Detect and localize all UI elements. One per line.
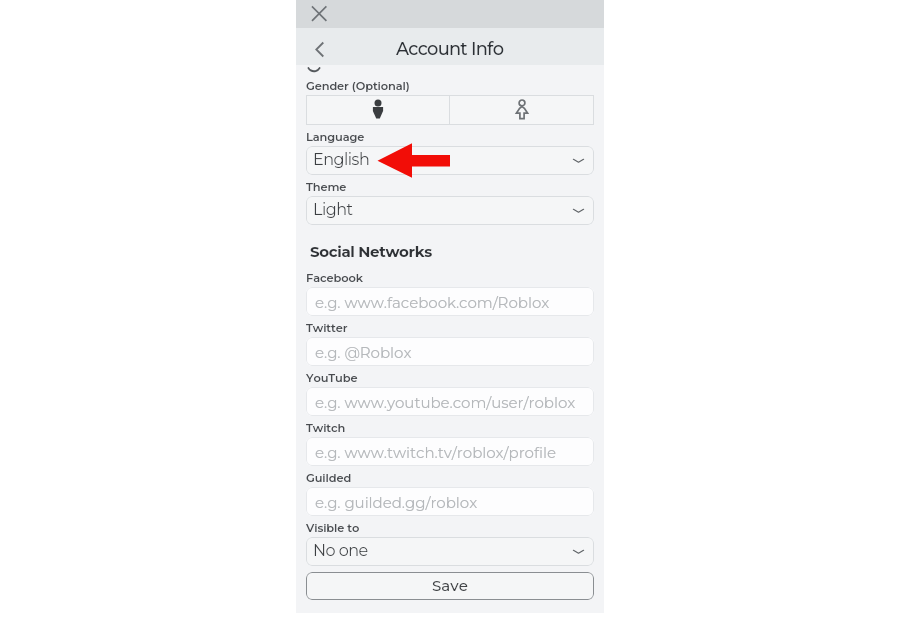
staticText: Theme [306, 180, 347, 194]
staticText: No one [313, 541, 368, 561]
staticText: e.g. guilded.gg/roblox [315, 493, 478, 511]
button[interactable]: Male [306, 95, 449, 125]
button[interactable]: e.g. www.youtube.com/user/roblox [306, 387, 594, 416]
staticText: e.g. www.twitch.tv/roblox/profile [315, 443, 556, 461]
staticText: Guilded [306, 471, 352, 485]
staticText: YouTube [306, 371, 358, 385]
button[interactable]: Light [306, 196, 594, 225]
staticText: Facebook [306, 271, 363, 285]
button[interactable]: No one [306, 537, 594, 566]
staticText: Twitter [306, 321, 348, 335]
button[interactable]: Back [306, 36, 328, 58]
button[interactable]: English [306, 146, 594, 175]
button[interactable]: Close [306, 2, 330, 26]
button[interactable]: Female [450, 95, 594, 125]
staticText: Twitch [306, 421, 346, 435]
staticText: e.g. @Roblox [315, 343, 412, 361]
staticText: Light [313, 200, 353, 220]
staticText: Visible to [306, 521, 360, 535]
button[interactable]: e.g. @Roblox [306, 337, 594, 366]
button[interactable]: e.g. guilded.gg/roblox [306, 487, 594, 516]
staticText: Language [306, 130, 365, 144]
staticText: e.g. www.facebook.com/Roblox [315, 293, 550, 311]
staticText: English [313, 150, 370, 170]
staticText: Gender (Optional) [306, 79, 410, 93]
staticText: e.g. www.youtube.com/user/roblox [315, 393, 576, 411]
button[interactable]: Save [306, 572, 594, 600]
staticText: Account Info [396, 38, 504, 60]
button[interactable]: e.g. www.facebook.com/Roblox [306, 287, 594, 316]
button[interactable]: e.g. www.twitch.tv/roblox/profile [306, 437, 594, 466]
staticText: Social Networks [310, 242, 432, 260]
staticText: Save [432, 576, 468, 594]
